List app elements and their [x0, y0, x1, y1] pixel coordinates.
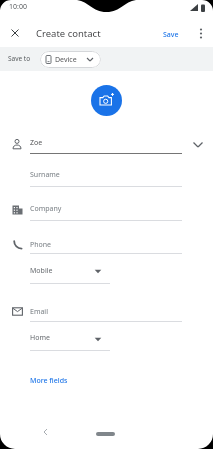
button[interactable]: [6, 25, 24, 43]
button[interactable]: [91, 85, 122, 116]
staticText: Home: [30, 333, 50, 343]
button[interactable]: Device: [40, 51, 101, 68]
button[interactable]: [96, 432, 115, 436]
staticText: More fields: [30, 376, 68, 386]
staticText: Mobile: [30, 266, 53, 276]
button[interactable]: More fields: [28, 374, 70, 388]
button[interactable]: Company: [30, 204, 182, 219]
button[interactable]: Surname: [30, 170, 182, 185]
staticText: 10:00: [9, 2, 27, 12]
staticText: Save: [163, 30, 179, 40]
staticText: Save to: [8, 54, 31, 63]
staticText: Device: [55, 55, 77, 65]
staticText: Company: [30, 204, 62, 214]
staticText: Create contact: [36, 27, 101, 40]
button[interactable]: Phone: [30, 240, 182, 254]
staticText: Phone: [30, 240, 52, 250]
button[interactable]: Mobile: [30, 266, 110, 283]
staticText: Zoe: [30, 138, 43, 148]
button[interactable]: [194, 25, 208, 43]
button[interactable]: Home: [30, 333, 110, 350]
button[interactable]: [36, 425, 54, 439]
button[interactable]: Save: [159, 26, 183, 44]
button[interactable]: Email: [30, 307, 182, 321]
staticText: Email: [30, 307, 48, 317]
staticText: Surname: [30, 170, 60, 180]
button[interactable]: Zoe: [30, 138, 182, 153]
